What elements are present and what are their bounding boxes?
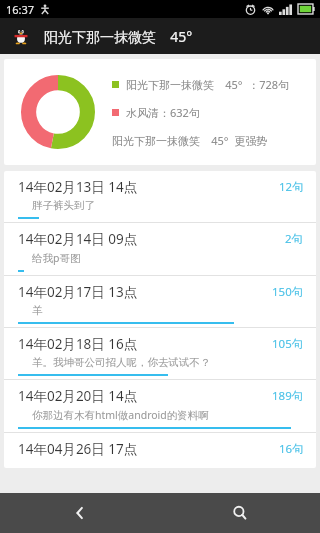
button[interactable]: 14年02月14日 09点	[4, 223, 316, 275]
staticText: 你那边有木有html做android的资料啊	[32, 408, 209, 422]
staticText: 14年02月17日 13点	[18, 283, 138, 301]
button[interactable]: 阳光下那一抹微笑ゝ45° ：728句	[4, 59, 316, 165]
staticText: 150句	[272, 284, 304, 300]
staticText: 14年04月26日 17点	[18, 440, 138, 458]
staticText: 羊	[32, 304, 43, 317]
staticText: 给我p哥图	[32, 251, 81, 265]
staticText: 水风清：632句	[126, 105, 200, 120]
staticText: 16句	[279, 441, 304, 457]
staticText: 14年02月14日 09点	[18, 230, 138, 248]
staticText: 2句	[285, 231, 304, 247]
button[interactable]: 14年02月13日 14点	[4, 171, 316, 222]
staticText: 胖子裤头到了	[32, 199, 95, 212]
staticText: 189句	[272, 388, 304, 404]
staticText: 14年02月18日 16点	[18, 335, 138, 353]
button[interactable]: 14年02月18日 16点	[4, 328, 316, 379]
staticText: 12句	[279, 179, 304, 195]
staticText: 16:37	[6, 2, 35, 17]
staticText: 阳光下那一抹微笑ゝ45° 更强势	[112, 133, 268, 148]
button[interactable]: 14年02月20日 14点	[4, 380, 316, 432]
button[interactable]: Search	[160, 493, 320, 533]
staticText: 阳光下那一抹微笑ゝ45°	[44, 27, 193, 46]
staticText: 14年02月13日 14点	[18, 178, 138, 196]
staticText: 阳光下那一抹微笑ゝ45° ：728句	[126, 77, 290, 92]
staticText: 105句	[272, 336, 304, 352]
button[interactable]: 14年04月26日 17点	[4, 433, 316, 468]
staticText: 羊。我坤哥公司招人呢，你去试试不？	[32, 356, 211, 369]
staticText: 14年02月20日 14点	[18, 387, 138, 405]
button[interactable]: Back	[0, 493, 160, 533]
button[interactable]: 14年02月17日 13点	[4, 276, 316, 327]
